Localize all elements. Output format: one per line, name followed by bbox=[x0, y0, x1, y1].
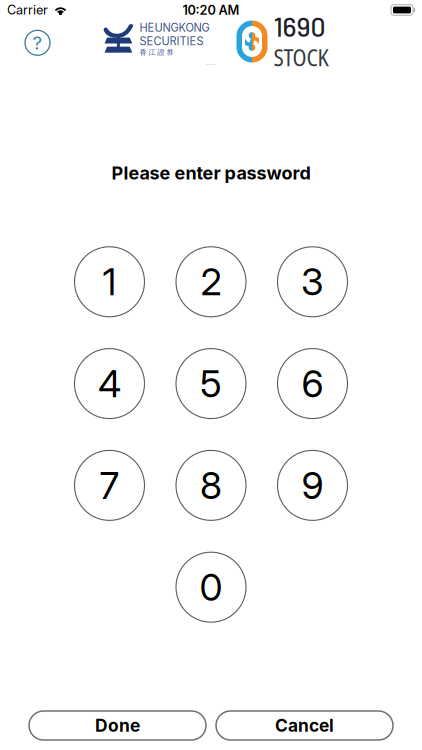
staticText: HEUNGKONG bbox=[139, 21, 209, 34]
staticText: 1690 bbox=[273, 10, 325, 42]
button[interactable]: 3 bbox=[277, 247, 347, 317]
button[interactable]: Cancel bbox=[216, 711, 393, 740]
button[interactable]: 4 bbox=[74, 349, 144, 419]
staticText: Cancel bbox=[275, 715, 334, 736]
button[interactable]: Done bbox=[29, 711, 206, 740]
staticText: 香 江 證 券 bbox=[139, 48, 173, 57]
staticText: 3 bbox=[301, 259, 324, 304]
staticText: 1 bbox=[102, 259, 116, 304]
staticText: ? bbox=[32, 31, 42, 54]
staticText: Please enter password bbox=[111, 162, 310, 184]
button[interactable]: 2 bbox=[176, 247, 246, 317]
staticText: STOCK bbox=[273, 42, 328, 73]
staticText: 8 bbox=[200, 463, 222, 508]
button[interactable]: Help bbox=[15, 21, 59, 65]
staticText: SECURITIES bbox=[139, 34, 203, 48]
button[interactable]: 7 bbox=[74, 450, 144, 520]
button[interactable]: 0 bbox=[176, 552, 246, 622]
staticText: 10:20 AM bbox=[182, 2, 239, 18]
staticText: Done bbox=[95, 715, 140, 736]
staticText: 9 bbox=[301, 463, 323, 508]
staticText: 7 bbox=[99, 463, 119, 508]
staticText: Carrier bbox=[7, 2, 48, 18]
staticText: 4 bbox=[98, 361, 121, 406]
button[interactable]: 9 bbox=[277, 450, 347, 520]
button[interactable]: 8 bbox=[176, 450, 246, 520]
button[interactable]: 5 bbox=[176, 349, 246, 419]
staticText: 5 bbox=[200, 361, 222, 406]
button[interactable]: 1 bbox=[74, 247, 144, 317]
staticText: 0 bbox=[199, 565, 222, 610]
staticText: 6 bbox=[301, 361, 323, 406]
staticText: 2 bbox=[200, 259, 221, 304]
button[interactable]: 6 bbox=[277, 349, 347, 419]
